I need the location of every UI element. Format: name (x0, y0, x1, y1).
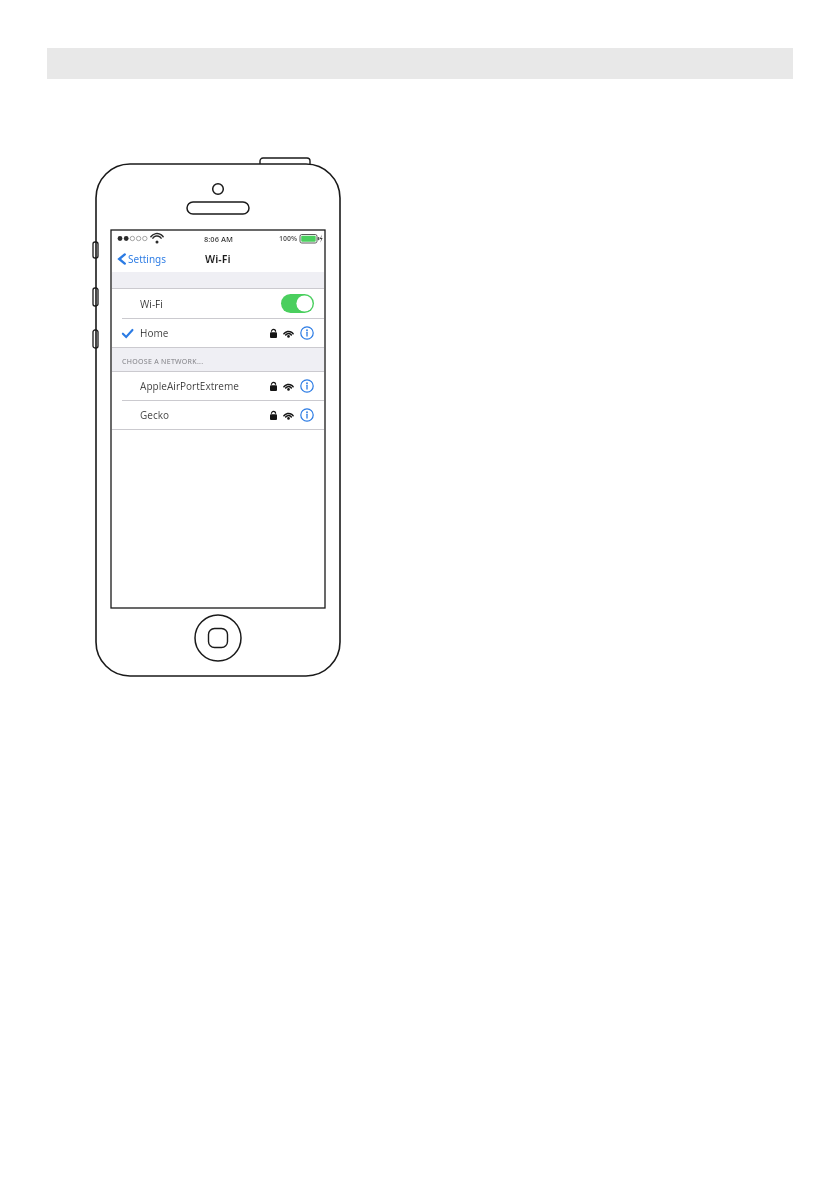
staticText: Gecko (140, 408, 170, 422)
staticText: Wi-Fi (140, 297, 163, 311)
button[interactable]: Gecko (112, 401, 324, 429)
button[interactable]: Home (112, 319, 324, 347)
button[interactable]: Wi-Fi on (281, 294, 314, 313)
staticText: AppleAirPortExtreme (140, 379, 239, 393)
button[interactable]: Wi-Fi (112, 289, 324, 318)
button[interactable]: Settings (112, 248, 173, 270)
staticText: Settings (128, 252, 167, 266)
button[interactable]: AppleAirPortExtreme (112, 372, 324, 400)
button[interactable]: More info about Gecko (300, 408, 314, 422)
staticText: CHOOSE A NETWORK... (122, 357, 204, 367)
staticText: Wi-Fi (205, 252, 231, 266)
button[interactable]: More info about AppleAirPortExtreme (300, 379, 314, 393)
staticText: Home (140, 326, 169, 340)
button[interactable]: More info about Home (300, 326, 314, 340)
staticText: 100% (279, 234, 298, 244)
staticText: 8:06 AM (204, 234, 233, 244)
